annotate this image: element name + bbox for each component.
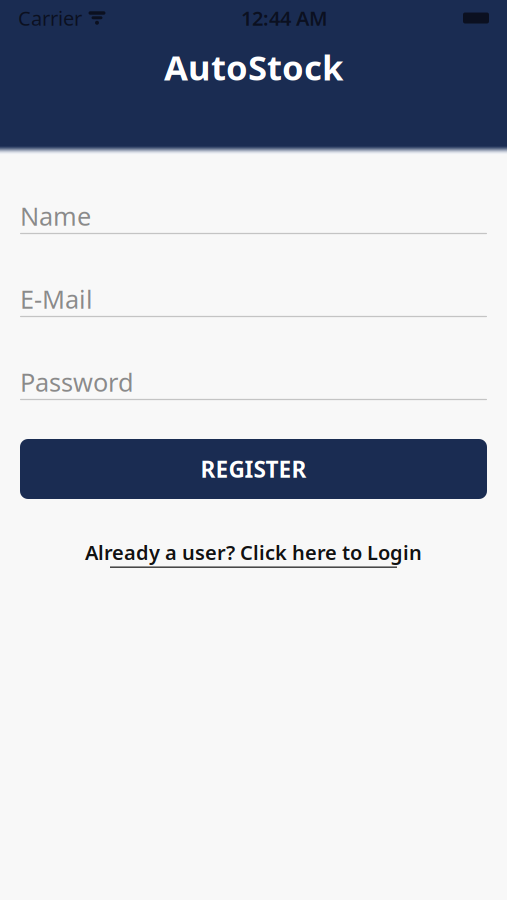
staticText: E-Mail — [20, 282, 93, 316]
staticText: REGISTER — [200, 454, 306, 484]
staticText: Carrier — [18, 5, 82, 31]
staticText: 12:44 AM — [241, 5, 328, 31]
staticText: Already a user? Click here to Login — [85, 539, 422, 566]
button[interactable]: REGISTER — [20, 439, 487, 499]
staticText: AutoStock — [164, 44, 343, 90]
button[interactable]: Already a user? Click here to Login — [77, 535, 430, 572]
staticText: Password — [20, 365, 134, 399]
staticText: Name — [20, 199, 91, 233]
